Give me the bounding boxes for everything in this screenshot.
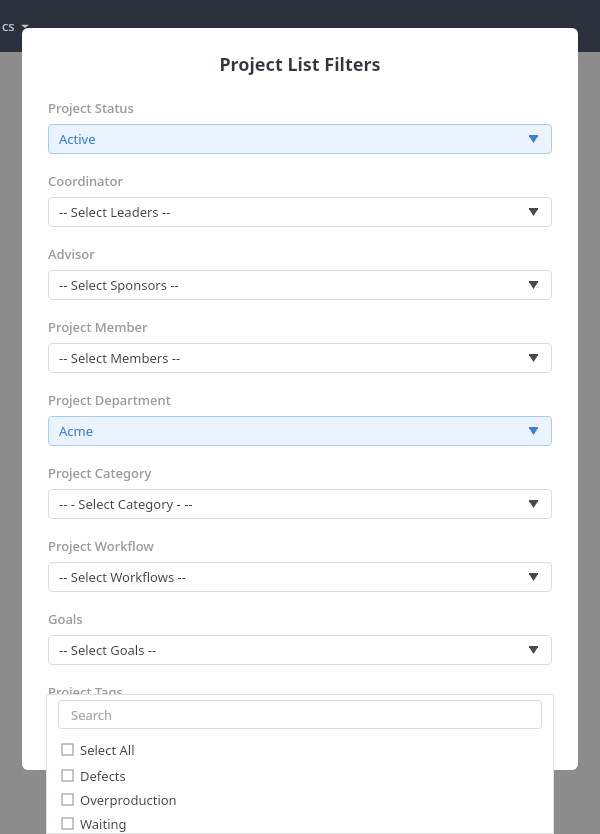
button[interactable]: Search [58, 700, 542, 729]
button[interactable]: Select All [46, 739, 554, 760]
staticText: Overproduction [80, 791, 177, 809]
staticText: Project Member [48, 318, 148, 336]
button[interactable]: -- Select Goals -- [48, 635, 552, 665]
staticText: Active [59, 130, 96, 148]
staticText: Project Tags [48, 683, 123, 701]
button[interactable]: -- Select Sponsors -- [48, 270, 552, 300]
staticText: -- Select Sponsors -- [59, 276, 179, 294]
staticText: Goals [48, 610, 83, 628]
staticText: Waiting [80, 815, 127, 833]
button[interactable]: Overproduction [46, 789, 554, 810]
button[interactable]: Defects [46, 765, 554, 786]
button[interactable]: -- - Select Category - -- [48, 489, 552, 519]
button[interactable]: Waiting [46, 813, 554, 834]
button[interactable]: -- Select Workflows -- [48, 562, 552, 592]
staticText: -- - Select Category - -- [59, 495, 193, 513]
staticText: -- Select Leaders -- [59, 203, 171, 221]
staticText: Project Category [48, 464, 152, 482]
staticText: Advisor [48, 245, 95, 263]
staticText: Select All [80, 741, 135, 759]
staticText: Acme [59, 422, 94, 440]
button[interactable]: -- Select Tags -- [48, 708, 552, 738]
staticText: Defects [80, 767, 126, 785]
button[interactable]: Acme [48, 416, 552, 446]
staticText: cs [2, 17, 15, 35]
staticText: Project Workflow [48, 537, 154, 555]
staticText: Project Status [48, 99, 134, 117]
button[interactable]: -- Select Leaders -- [48, 197, 552, 227]
staticText: Coordinator [48, 172, 123, 190]
staticText: -- Select Tags -- [59, 714, 150, 732]
staticText: Project List Filters [22, 52, 578, 77]
staticText: Search [71, 706, 113, 724]
staticText: Project Department [48, 391, 171, 409]
staticText: -- Select Workflows -- [59, 568, 186, 586]
button[interactable]: -- Select Members -- [48, 343, 552, 373]
button[interactable]: Active [48, 124, 552, 154]
staticText: -- Select Members -- [59, 349, 181, 367]
staticText: -- Select Goals -- [59, 641, 157, 659]
